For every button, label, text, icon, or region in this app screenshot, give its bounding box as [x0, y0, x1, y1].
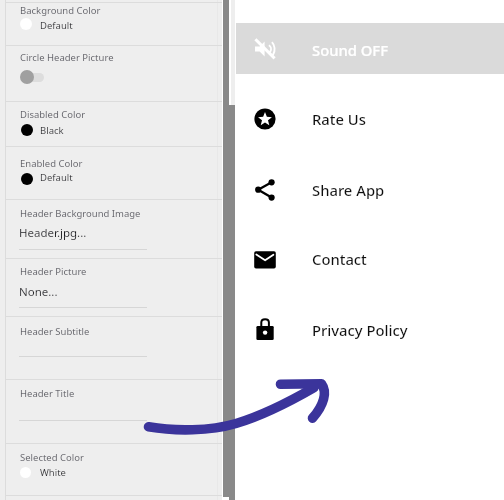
- staticText: Header.jpg...: [19, 225, 87, 241]
- button[interactable]: [0, 199, 222, 258]
- staticText: Selected Color: [20, 451, 84, 464]
- staticText: Default: [40, 19, 73, 32]
- staticText: Header Subtitle: [20, 325, 90, 338]
- other: Privacy Policy: [251, 315, 279, 343]
- staticText: White: [40, 466, 66, 479]
- button[interactable]: [0, 316, 222, 379]
- staticText: Header Background Image: [20, 207, 141, 220]
- staticText: Disabled Color: [20, 108, 86, 121]
- staticText: Header Title: [20, 387, 75, 400]
- button[interactable]: [0, 379, 222, 443]
- staticText: Header Picture: [20, 265, 87, 278]
- other: Sound off: [251, 35, 279, 63]
- button[interactable]: [0, 2, 222, 45]
- staticText: Share App: [312, 180, 385, 200]
- staticText: Contact: [312, 249, 367, 269]
- button[interactable]: Sound off: [236, 23, 504, 74]
- staticText: Rate Us: [312, 109, 366, 129]
- staticText: Privacy Policy: [312, 320, 408, 340]
- button[interactable]: [0, 45, 222, 102]
- other: Contact: [251, 246, 279, 274]
- button[interactable]: [0, 258, 222, 316]
- button[interactable]: Share App: [235, 154, 504, 224]
- staticText: Black: [40, 124, 64, 137]
- staticText: Default: [40, 171, 73, 184]
- other: Rate Us: [251, 105, 279, 133]
- button[interactable]: [0, 146, 222, 200]
- staticText: None...: [19, 284, 58, 300]
- button[interactable]: [0, 101, 222, 146]
- staticText: Background Color: [20, 4, 101, 17]
- button[interactable]: Rate Us: [235, 84, 504, 154]
- button[interactable]: Contact: [235, 225, 504, 295]
- button[interactable]: Privacy Policy: [235, 295, 504, 365]
- staticText: Sound OFF: [312, 40, 388, 60]
- staticText: Enabled Color: [20, 157, 83, 170]
- staticText: Circle Header Picture: [20, 51, 114, 64]
- other: Share App: [251, 176, 279, 204]
- button[interactable]: [0, 443, 222, 495]
